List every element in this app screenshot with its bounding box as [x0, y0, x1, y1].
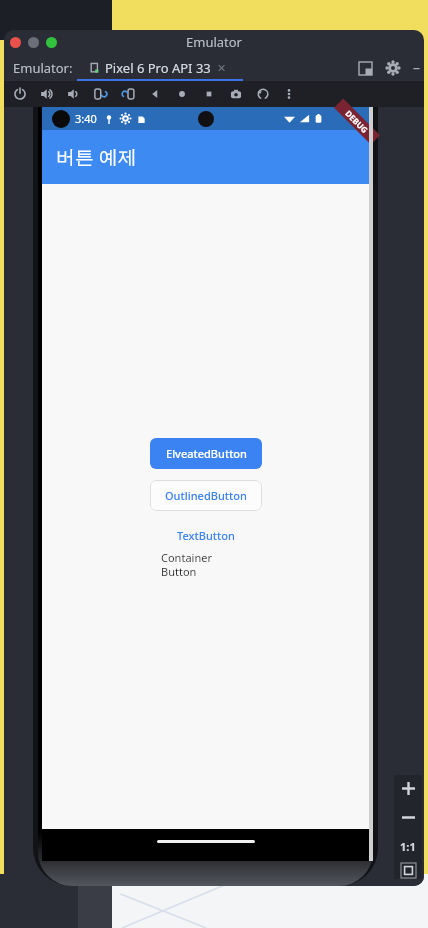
- button[interactable]: History: [255, 86, 271, 102]
- button[interactable]: TextButton: [150, 522, 262, 548]
- button[interactable]: Rotate left: [93, 86, 109, 102]
- button[interactable]: Fit to window: [396, 862, 420, 879]
- staticText: OutlinedButton: [165, 488, 247, 503]
- staticText: ✕: [217, 62, 227, 75]
- button[interactable]: Overview: [201, 86, 217, 102]
- staticText: –: [413, 58, 420, 77]
- button[interactable]: Power: [12, 86, 28, 102]
- button[interactable]: Zoom out: [395, 804, 421, 830]
- staticText: 버튼 예제: [56, 144, 137, 170]
- button[interactable]: ElveatedButton: [150, 438, 262, 469]
- staticText: Pixel 6 Pro API 33: [105, 59, 211, 77]
- staticText: 3:40: [75, 111, 97, 126]
- staticText: TextButton: [177, 528, 235, 543]
- button[interactable]: Zoom in: [395, 775, 421, 801]
- button[interactable]: Container Button: [150, 550, 262, 579]
- staticText: DEBUG: [343, 108, 371, 135]
- staticText: Container Button: [161, 550, 212, 579]
- button[interactable]: More: [282, 87, 296, 101]
- button[interactable]: Volume down: [66, 86, 82, 102]
- staticText: Emulator: [186, 33, 242, 51]
- staticText: 1:1: [400, 839, 416, 854]
- button[interactable]: Back: [147, 86, 163, 102]
- button[interactable]: OutlinedButton: [150, 480, 262, 511]
- button[interactable]: Rotate right: [120, 86, 136, 102]
- button[interactable]: Screenshot: [228, 86, 244, 102]
- staticText: ElveatedButton: [166, 446, 247, 461]
- button[interactable]: 1:1: [395, 833, 421, 859]
- button[interactable]: Home: [174, 86, 190, 102]
- button[interactable]: Layout: [357, 60, 373, 76]
- button[interactable]: Settings: [385, 60, 401, 76]
- staticText: Emulator:: [13, 59, 73, 77]
- button[interactable]: Volume up: [39, 86, 55, 102]
